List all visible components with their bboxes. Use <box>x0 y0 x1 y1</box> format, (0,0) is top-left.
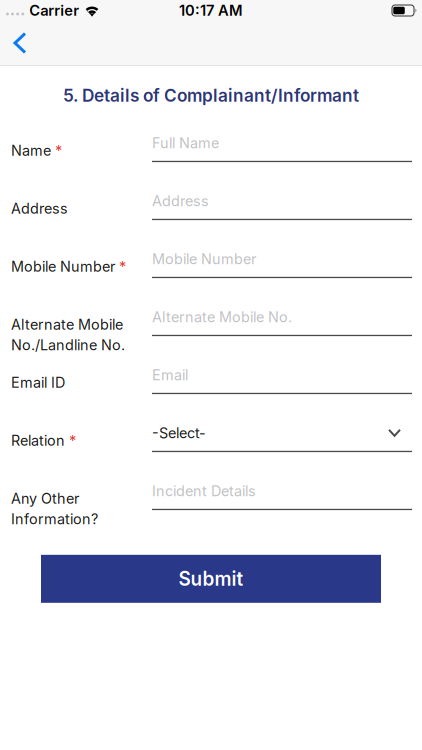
staticText: 5. Details of Complainant/Informant <box>63 85 359 106</box>
staticText: Submit <box>178 567 243 590</box>
button[interactable]: Back <box>0 23 44 62</box>
staticText: Email <box>152 366 188 384</box>
staticText: Address <box>152 192 209 210</box>
staticText: Mobile Number <box>152 250 256 268</box>
staticText: Relation <box>11 432 65 449</box>
staticText: Address <box>11 200 68 217</box>
staticText: Mobile Number <box>11 258 115 275</box>
staticText: Name <box>11 142 51 159</box>
staticText: Alternate Mobile No. <box>152 308 292 326</box>
staticText: -Select- <box>152 424 206 442</box>
staticText: 10:17 AM <box>179 2 243 19</box>
staticText: * <box>69 432 76 449</box>
staticText: Email ID <box>11 374 65 391</box>
staticText: Carrier <box>29 2 79 19</box>
staticText: Full Name <box>152 134 219 152</box>
staticText: * <box>55 142 62 159</box>
staticText: No./Landline No. <box>11 336 125 354</box>
staticText: Alternate Mobile <box>11 316 123 333</box>
staticText: * <box>119 258 126 275</box>
staticText: Incident Details <box>152 482 256 500</box>
button[interactable]: Submit <box>41 555 381 603</box>
staticText: Information? <box>11 510 98 528</box>
staticText: Any Other <box>11 490 79 507</box>
